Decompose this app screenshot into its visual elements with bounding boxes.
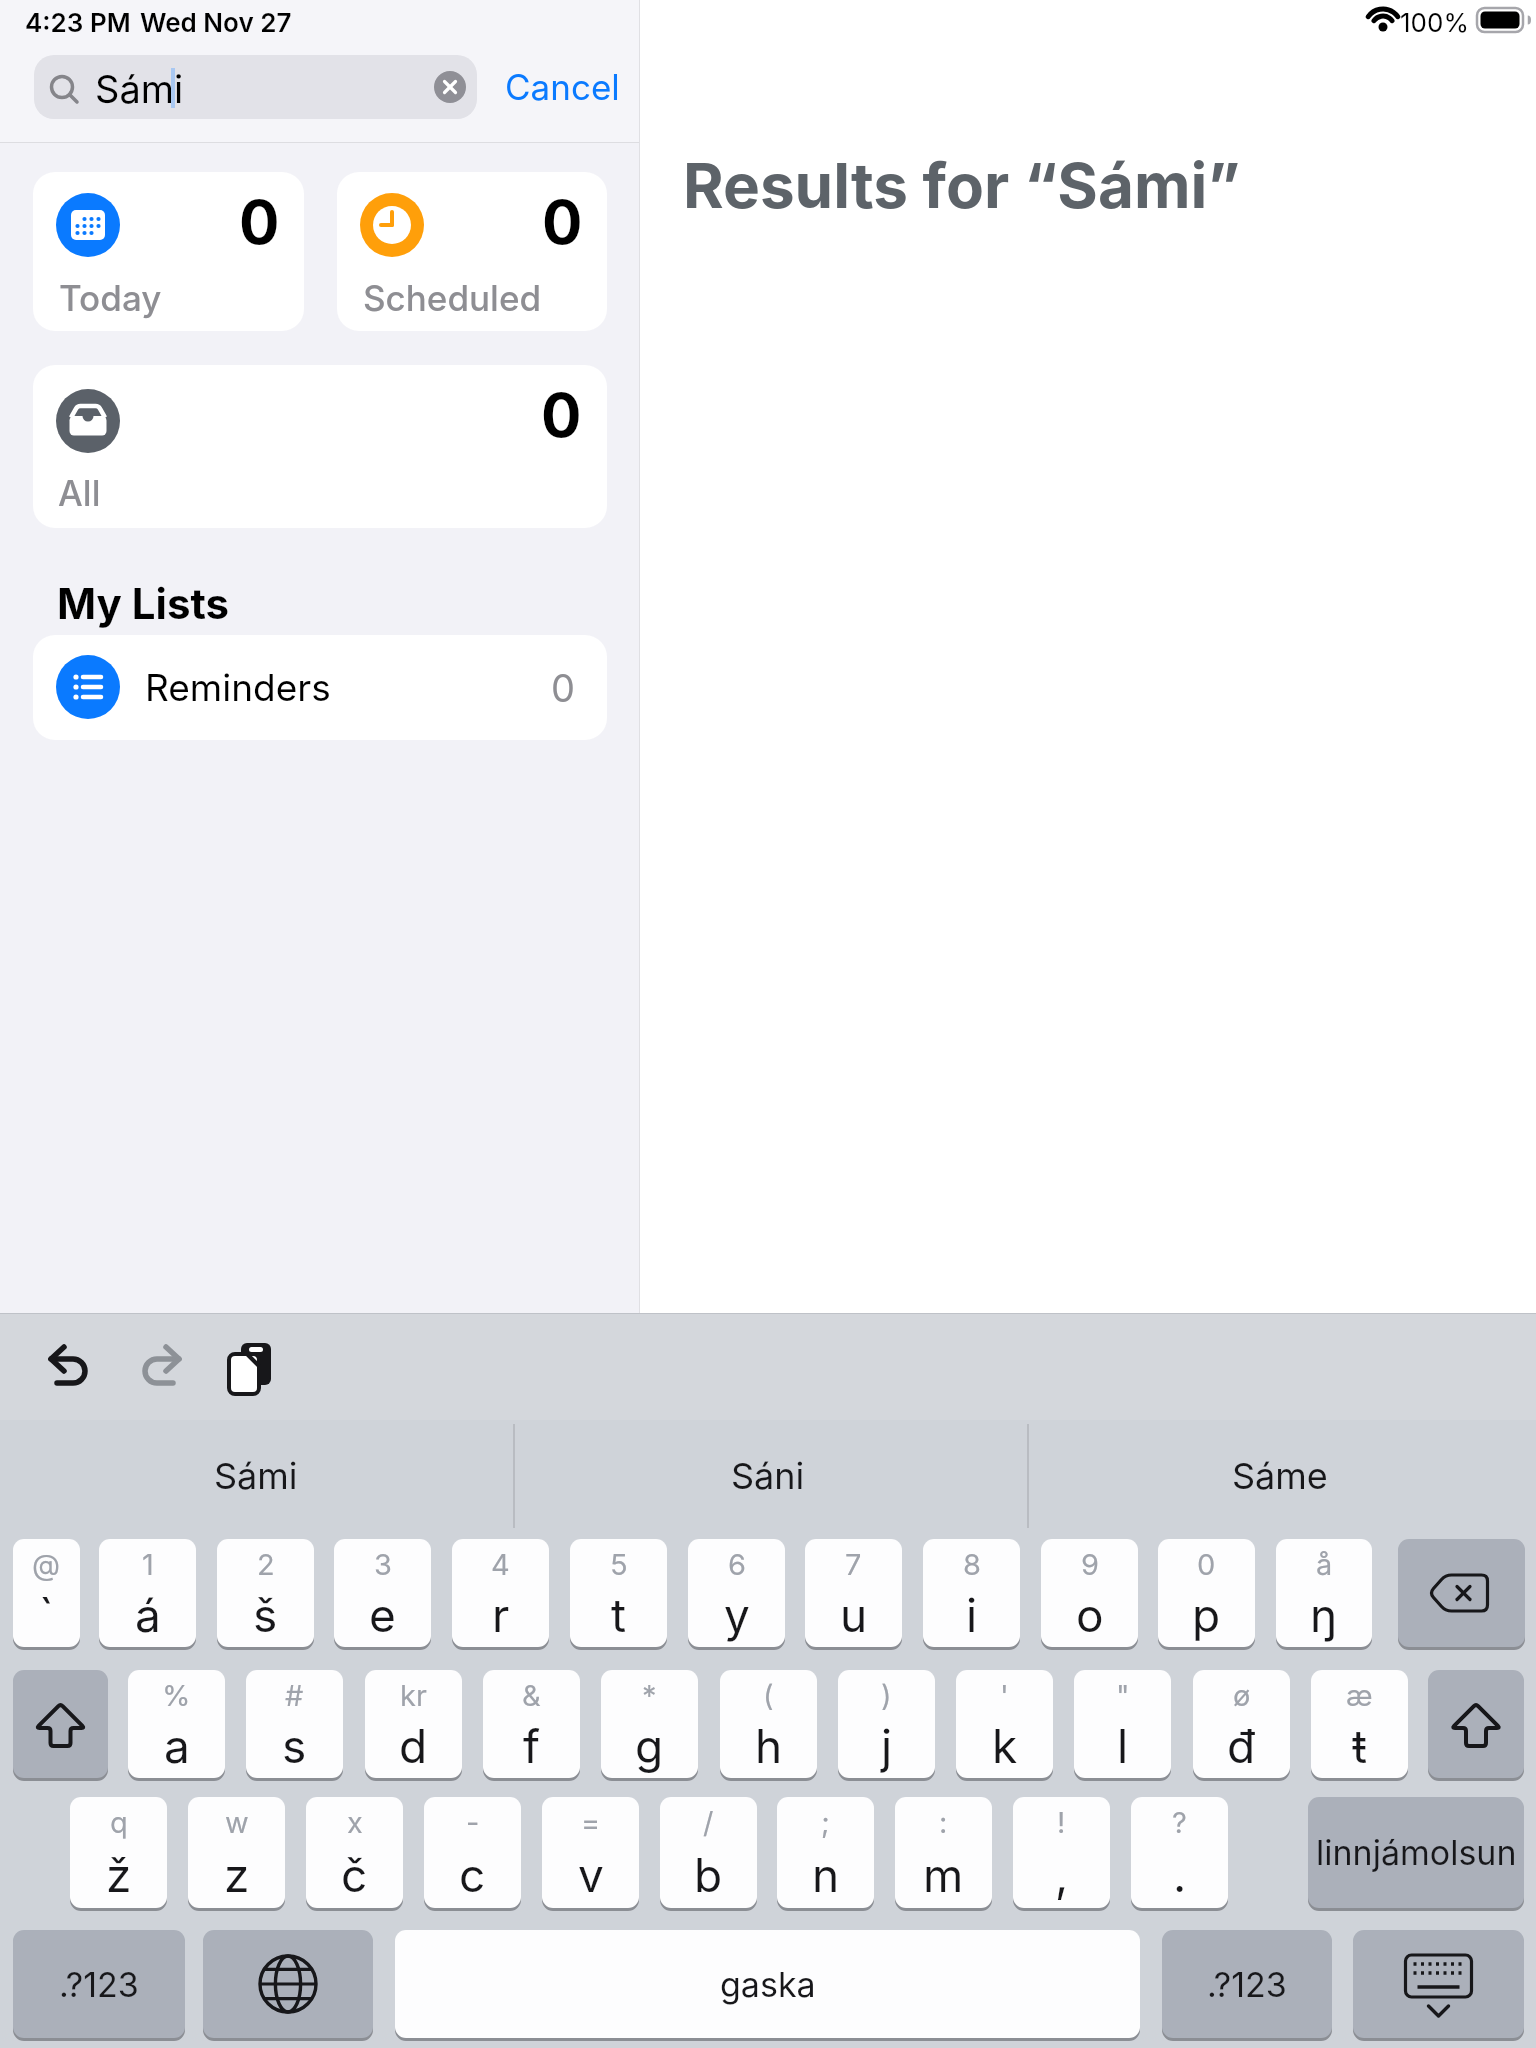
button[interactable] [13, 1670, 108, 1778]
staticText: m [923, 1847, 964, 1903]
button[interactable]: 0 [33, 365, 607, 528]
staticText: Wed Nov 27 [140, 7, 292, 38]
staticText: gaska [720, 1964, 816, 2005]
button[interactable]: 0 [1158, 1539, 1255, 1647]
button[interactable] [1398, 1539, 1525, 1647]
staticText: ŋ [1310, 1587, 1338, 1643]
staticText: a [164, 1718, 190, 1774]
button[interactable]: : [895, 1797, 992, 1908]
button[interactable]: ) [838, 1670, 935, 1778]
button[interactable]: 4 [452, 1539, 549, 1647]
staticText: Results for “Sámi” [683, 148, 1241, 223]
staticText: .?123 [59, 1964, 139, 2005]
button[interactable]: linnjámolsun [1308, 1797, 1524, 1908]
button[interactable]: Reminders [33, 635, 607, 740]
button[interactable]: ø [1193, 1670, 1290, 1778]
staticText: á [135, 1587, 161, 1643]
staticText: ! [1057, 1805, 1066, 1840]
staticText: 0 [1197, 1547, 1216, 1582]
staticText: v [578, 1847, 604, 1903]
staticText: kr [400, 1678, 427, 1713]
staticText: q [110, 1805, 128, 1840]
staticText: z [224, 1847, 250, 1903]
staticText: & [522, 1678, 541, 1713]
staticText: Sáni [731, 1454, 805, 1498]
staticText: g [635, 1718, 664, 1774]
button[interactable]: kr [365, 1670, 462, 1778]
button[interactable]: q [70, 1797, 167, 1908]
button[interactable]: 9 [1041, 1539, 1138, 1647]
button[interactable]: # [246, 1670, 343, 1778]
button[interactable]: ; [777, 1797, 874, 1908]
button[interactable]: ( [720, 1670, 817, 1778]
staticText: o [1076, 1587, 1104, 1643]
button[interactable]: gaska [395, 1930, 1140, 2038]
button[interactable]: ' [956, 1670, 1053, 1778]
staticText: Sámi [95, 66, 184, 112]
staticText: 100% [1400, 7, 1469, 38]
button[interactable]: x [306, 1797, 403, 1908]
button[interactable]: .?123 [13, 1930, 185, 2038]
button[interactable] [203, 1930, 373, 2038]
staticText: Reminders [145, 665, 331, 710]
button[interactable]: % [128, 1670, 225, 1778]
staticText: p [1192, 1587, 1221, 1643]
button[interactable]: @ [13, 1539, 80, 1647]
staticText: đ [1227, 1718, 1256, 1774]
staticText: @ [32, 1547, 61, 1582]
button[interactable] [1353, 1930, 1524, 2038]
staticText: Scheduled [363, 277, 542, 319]
button[interactable]: / [660, 1797, 757, 1908]
button[interactable]: " [1074, 1670, 1171, 1778]
staticText: ? [1172, 1805, 1187, 1840]
button[interactable]: Sáni [512, 1424, 1024, 1528]
button[interactable]: 6 [688, 1539, 785, 1647]
button[interactable]: & [483, 1670, 580, 1778]
staticText: = [581, 1805, 601, 1840]
staticText: 0 [541, 379, 582, 452]
button[interactable]: .?123 [1162, 1930, 1332, 2038]
button[interactable]: 7 [805, 1539, 902, 1647]
staticText: My Lists [57, 578, 230, 629]
staticText: 6 [728, 1547, 746, 1582]
button[interactable]: ! [1013, 1797, 1110, 1908]
staticText: ) [881, 1678, 892, 1713]
button[interactable]: Sámi [0, 1424, 512, 1528]
staticText: 8 [963, 1547, 981, 1582]
button[interactable]: w [188, 1797, 285, 1908]
button[interactable]: ? [1131, 1797, 1228, 1908]
staticText: n [812, 1847, 840, 1903]
button[interactable]: 3 [334, 1539, 431, 1647]
button[interactable]: * [601, 1670, 698, 1778]
staticText: j [881, 1718, 893, 1774]
staticText: " [1116, 1678, 1130, 1713]
staticText: - [466, 1805, 480, 1840]
staticText: l [1117, 1718, 1129, 1774]
button[interactable]: = [542, 1797, 639, 1908]
button[interactable]: 8 [923, 1539, 1020, 1647]
staticText: , [1055, 1847, 1069, 1903]
button[interactable]: 5 [570, 1539, 667, 1647]
button[interactable]: Sámi [34, 55, 477, 119]
staticText: ` [39, 1587, 54, 1643]
button[interactable]: 2 [217, 1539, 314, 1647]
button[interactable]: - [424, 1797, 521, 1908]
staticText: r [492, 1587, 510, 1643]
button[interactable]: 0 [33, 172, 304, 331]
button[interactable]: Sáme [1024, 1424, 1536, 1528]
button[interactable]: Cancel [500, 60, 615, 102]
staticText: y [724, 1587, 750, 1643]
staticText: .?123 [1207, 1964, 1287, 2005]
staticText: : [939, 1805, 948, 1840]
staticText: ( [763, 1678, 774, 1713]
staticText: Sáme [1232, 1454, 1328, 1498]
staticText: 9 [1081, 1547, 1099, 1582]
button[interactable] [1428, 1670, 1524, 1778]
staticText: h [755, 1718, 783, 1774]
button[interactable]: 1 [99, 1539, 196, 1647]
staticText: i [966, 1587, 978, 1643]
button[interactable]: å [1276, 1539, 1372, 1647]
button[interactable]: 0 [337, 172, 607, 331]
button[interactable]: æ [1311, 1670, 1408, 1778]
staticText: š [253, 1587, 278, 1643]
